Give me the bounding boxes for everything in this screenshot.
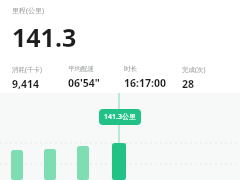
staticText: 9,414 xyxy=(12,77,40,91)
button[interactable]: 平均配速 xyxy=(68,65,124,90)
button[interactable]: 141.3 公里 xyxy=(99,109,141,125)
button[interactable]: 141.3 公里 xyxy=(0,93,240,180)
staticText: 28 xyxy=(182,77,195,91)
staticText: 平均配速 xyxy=(68,65,94,73)
button[interactable]: 消耗(千卡) xyxy=(12,65,68,91)
staticText: 141.3 xyxy=(12,20,77,54)
button[interactable]: 完成(次) xyxy=(182,65,222,91)
staticText: 时长 xyxy=(124,65,137,73)
staticText: 完成(次) xyxy=(182,65,206,74)
button[interactable]: 里程(公里) xyxy=(12,6,45,16)
staticText: 16:17:00 xyxy=(124,76,166,90)
staticText: 消耗(千卡) xyxy=(12,65,42,74)
staticText: 141.3公里 xyxy=(104,112,136,122)
staticText: 06'54" xyxy=(68,76,100,90)
button[interactable]: 时长 xyxy=(124,65,182,90)
